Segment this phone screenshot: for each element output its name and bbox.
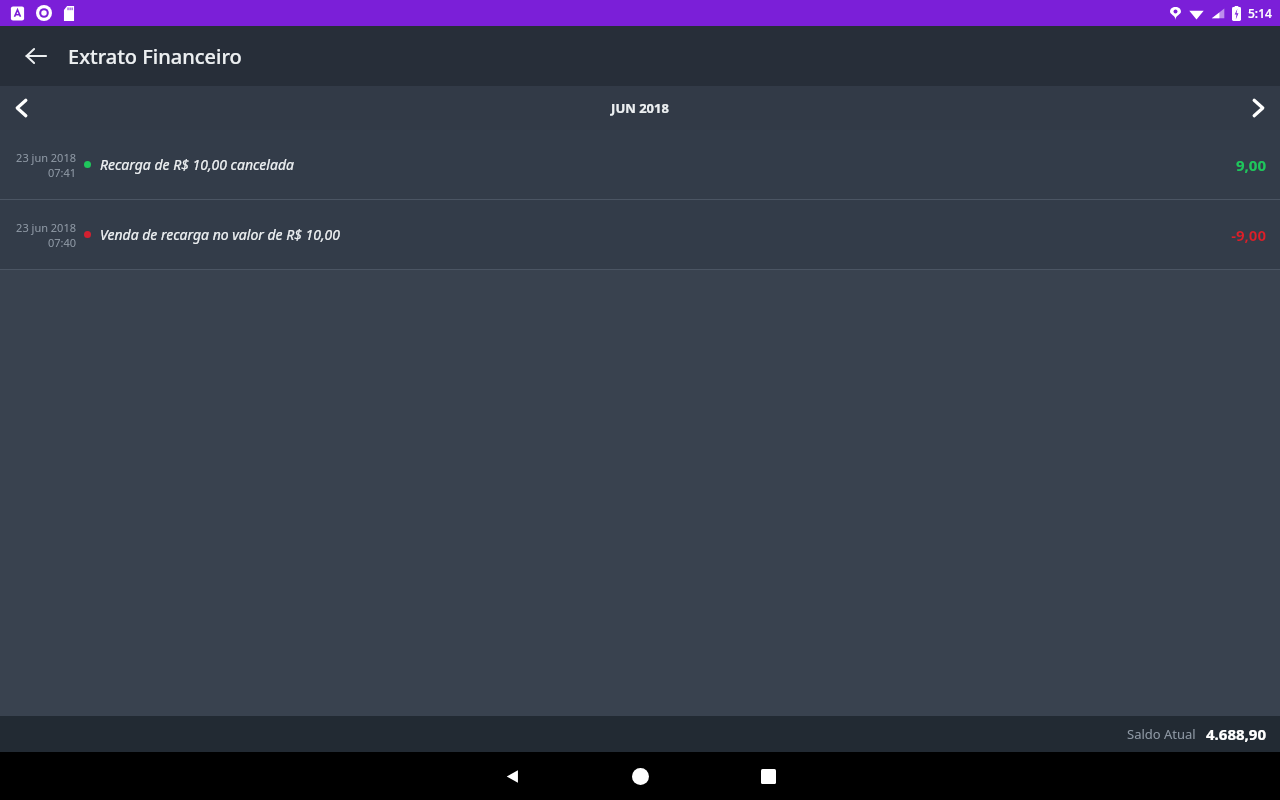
button[interactable]: Next month	[1236, 86, 1280, 130]
staticText: 07:41	[47, 165, 76, 180]
staticText: JUN 2018	[611, 99, 669, 117]
staticText: Recarga de R$ 10,00 cancelada	[100, 155, 1235, 174]
button[interactable]: 23 jun 2018	[0, 200, 1280, 269]
staticText: 23 jun 2018	[16, 150, 76, 165]
staticText: -9,00	[1231, 225, 1266, 245]
staticText: 4.688,90	[1206, 724, 1266, 744]
button[interactable]: Home	[616, 752, 664, 800]
button[interactable]: 23 jun 2018	[0, 130, 1280, 199]
button[interactable]: Recent apps	[744, 752, 792, 800]
staticText: 23 jun 2018	[16, 220, 76, 235]
staticText: 9,00	[1235, 155, 1266, 175]
staticText: Saldo Atual	[1127, 725, 1196, 743]
button[interactable]: Back	[12, 32, 60, 80]
button[interactable]: Back	[488, 752, 536, 800]
staticText: Extrato Financeiro	[68, 43, 242, 70]
button[interactable]: Previous month	[0, 86, 44, 130]
staticText: 5:14	[1248, 5, 1272, 21]
staticText: 07:40	[47, 235, 76, 250]
staticText: Venda de recarga no valor de R$ 10,00	[100, 225, 1231, 244]
